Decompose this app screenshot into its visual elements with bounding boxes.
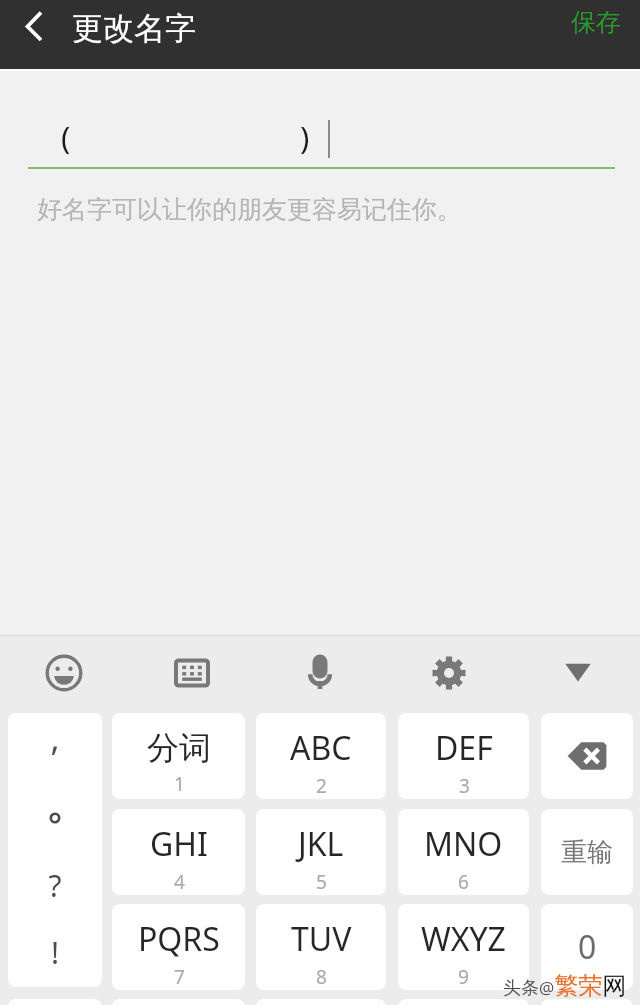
- button[interactable]: Hide keyboard: [550, 645, 606, 701]
- staticText: 4: [174, 869, 185, 895]
- button[interactable]: JKL: [256, 809, 386, 895]
- staticText: 头条@繁荣网: [503, 971, 627, 1001]
- staticText: 更改名字: [72, 9, 196, 48]
- button[interactable]: 保存: [545, 1, 640, 68]
- staticText: MNO: [424, 822, 503, 866]
- staticText: 9: [458, 964, 469, 990]
- button[interactable]: 重输: [541, 809, 633, 895]
- button[interactable]: 分词: [112, 713, 245, 799]
- button[interactable]: DEF: [398, 713, 529, 799]
- staticText: 分词: [147, 728, 211, 768]
- staticText: ): [300, 116, 310, 158]
- button[interactable]: Back: [0, 0, 68, 69]
- staticText: 重输: [561, 836, 613, 869]
- button[interactable]: ABC: [256, 713, 386, 799]
- button[interactable]: WXYZ: [398, 904, 529, 990]
- staticText: 8: [316, 964, 327, 990]
- staticText: 1: [174, 771, 185, 797]
- button[interactable]: Voice input: [292, 645, 348, 701]
- staticText: 好名字可以让你的朋友更容易记住你。: [37, 194, 462, 225]
- staticText: 3: [459, 773, 470, 799]
- staticText: ABC: [290, 726, 352, 770]
- staticText: 2: [316, 773, 327, 799]
- staticText: 6: [458, 869, 469, 895]
- button[interactable]: TUV: [256, 904, 386, 990]
- button[interactable]: ,: [8, 713, 102, 987]
- button[interactable]: MNO: [398, 809, 529, 895]
- button[interactable]: Settings: [421, 645, 477, 701]
- staticText: GHI: [150, 822, 208, 866]
- staticText: TUV: [291, 917, 352, 961]
- staticText: 7: [174, 964, 185, 990]
- staticText: 5: [316, 869, 327, 895]
- button[interactable]: 0: [541, 904, 633, 990]
- button[interactable]: GHI: [112, 809, 245, 895]
- staticText: ,: [8, 715, 102, 761]
- button[interactable]: Backspace: [541, 713, 633, 799]
- staticText: 保存: [571, 7, 621, 38]
- button[interactable]: Emoji: [36, 645, 92, 701]
- staticText: 0: [578, 925, 597, 969]
- staticText: DEF: [435, 726, 493, 770]
- staticText: WXYZ: [421, 917, 506, 961]
- staticText: JKL: [298, 822, 344, 866]
- button[interactable]: PQRS: [112, 904, 245, 990]
- staticText: PQRS: [138, 917, 220, 961]
- staticText: ?: [8, 865, 102, 906]
- staticText: !: [8, 932, 102, 973]
- staticText: (: [61, 116, 71, 158]
- button[interactable]: Keyboard: [164, 645, 220, 701]
